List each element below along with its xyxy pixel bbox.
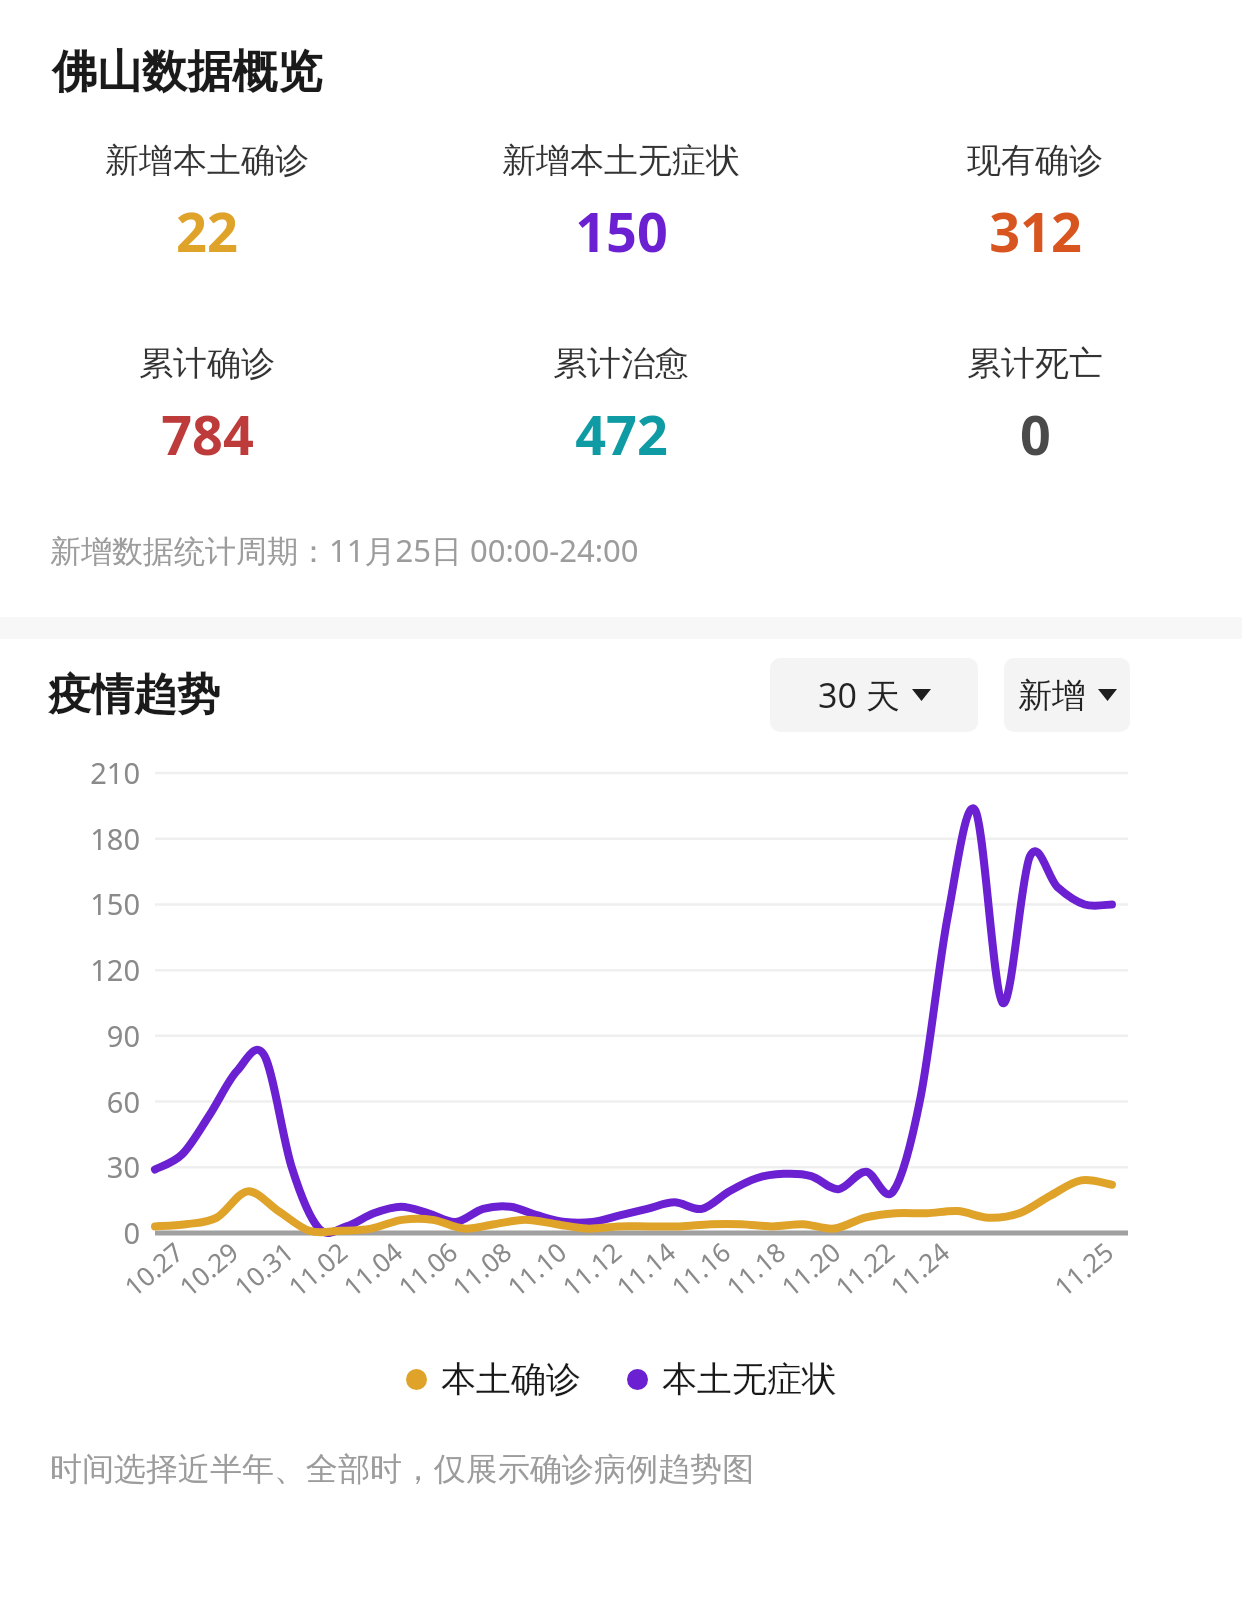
staticText: 0 [10,1213,140,1252]
staticText: 现有确诊 [967,139,1103,182]
other: Expand 30 天 options [912,689,931,701]
staticText: 佛山数据概览 [52,44,322,101]
staticText: 11.22 [828,1234,901,1303]
staticText: 疫情趋势 [48,668,220,722]
button[interactable]: 累计确诊 [0,342,414,471]
staticText: 累计确诊 [139,342,275,385]
button[interactable]: 本土无症状 [627,1357,837,1401]
staticText: 11.24 [883,1234,956,1303]
staticText: 0 [1020,397,1051,471]
staticText: 120 [10,950,140,989]
staticText: 10.27 [117,1234,190,1303]
staticText: 10.29 [172,1234,245,1303]
button[interactable]: 累计治愈 [414,342,828,471]
staticText: 22 [176,194,238,268]
staticText: 11.18 [719,1234,792,1303]
staticText: 11.14 [609,1234,682,1303]
staticText: 30 天 [818,672,900,718]
staticText: 11.16 [664,1234,737,1303]
staticText: 11.12 [555,1234,628,1303]
staticText: 累计死亡 [967,342,1103,385]
button[interactable]: 新增本土确诊 [0,139,414,268]
staticText: 累计治愈 [553,342,689,385]
staticText: 11.20 [774,1234,847,1303]
staticText: 472 [575,397,668,471]
button[interactable]: 现有确诊 [828,139,1242,268]
button[interactable]: 新增本土无症状 [414,139,828,268]
staticText: 180 [10,819,140,858]
staticText: 新增本土确诊 [105,139,309,182]
staticText: 210 [10,753,140,792]
staticText: 312 [989,194,1082,268]
staticText: 150 [575,194,668,268]
staticText: 784 [161,397,254,471]
button[interactable]: 新增 [1004,658,1130,732]
staticText: 90 [10,1016,140,1055]
staticText: 30 [10,1147,140,1186]
button[interactable]: 30 天 [770,658,978,732]
staticText: 新增数据统计周期：11月25日 00:00-24:00 [50,529,639,571]
staticText: 本土无症状 [662,1357,837,1401]
staticText: 11.06 [391,1234,464,1303]
staticText: 11.25 [1047,1234,1120,1303]
other: Expand 新增 options [1098,689,1117,701]
staticText: 11.02 [281,1234,354,1303]
button[interactable]: 本土确诊 [406,1357,581,1401]
staticText: 11.04 [336,1234,409,1303]
staticText: 11.10 [500,1234,573,1303]
staticText: 10.31 [227,1234,300,1303]
staticText: 新增本土无症状 [502,139,740,182]
staticText: 新增 [1018,674,1086,717]
staticText: 本土确诊 [441,1357,581,1401]
staticText: 150 [10,884,140,923]
staticText: 11.08 [445,1234,518,1303]
button[interactable]: 累计死亡 [828,342,1242,471]
staticText: 60 [10,1082,140,1121]
staticText: 时间选择近半年、全部时，仅展示确诊病例趋势图 [50,1449,754,1489]
